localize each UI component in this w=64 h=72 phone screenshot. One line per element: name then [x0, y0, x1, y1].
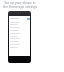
- staticText: Set up your device in the Home app setti…: [2, 1, 38, 9]
